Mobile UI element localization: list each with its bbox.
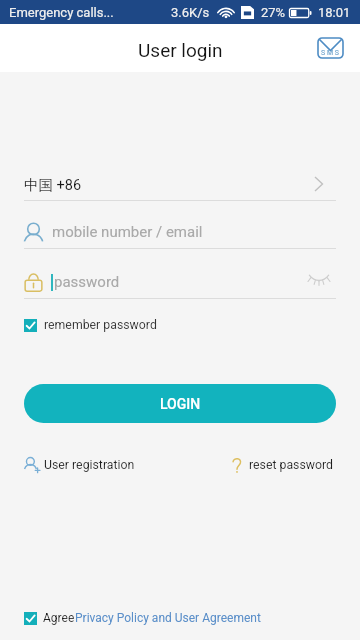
staticText: Privacy Policy and User Agreement xyxy=(75,611,261,625)
staticText: User login xyxy=(138,39,223,61)
button[interactable]: reset password xyxy=(230,457,334,473)
staticText: Emergency calls... xyxy=(9,5,114,20)
button[interactable]: SMS login xyxy=(311,29,349,67)
staticText: remember password xyxy=(44,318,157,332)
button[interactable]: User registration xyxy=(24,457,135,473)
button[interactable]: LOGIN xyxy=(24,384,336,423)
staticText: 27% xyxy=(261,5,286,20)
button[interactable]: remember password xyxy=(24,312,157,338)
staticText: 3.6K/s xyxy=(171,5,210,20)
staticText: mobile number / email xyxy=(52,223,203,241)
staticText: LOGIN xyxy=(160,396,201,412)
button[interactable]: Agree xyxy=(24,611,360,625)
button[interactable]: Show password xyxy=(306,269,332,289)
staticText: reset password xyxy=(249,458,334,472)
staticText: password xyxy=(54,273,120,291)
staticText: 18:01 xyxy=(318,5,351,20)
staticText: User registration xyxy=(44,458,135,472)
staticText: Agree xyxy=(43,611,75,625)
staticText: 中国 +86 xyxy=(24,176,82,194)
staticText: S M S xyxy=(321,49,339,57)
button[interactable]: 中国 +86 xyxy=(0,153,360,201)
